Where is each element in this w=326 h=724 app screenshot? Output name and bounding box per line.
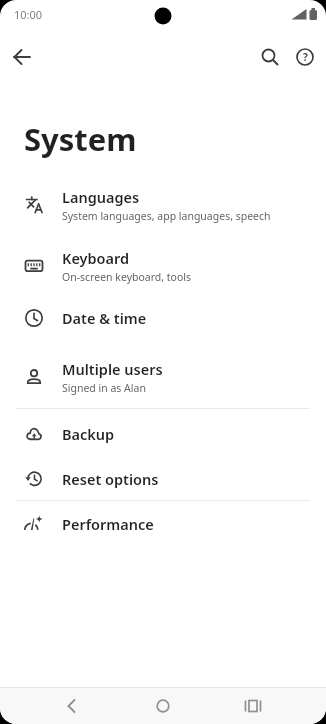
- button[interactable]: Keyboard: [0, 241, 326, 291]
- staticText: Languages: [62, 187, 140, 207]
- staticText: On-screen keyboard, tools: [62, 270, 192, 284]
- button[interactable]: [57, 691, 87, 721]
- button[interactable]: [254, 41, 286, 73]
- button[interactable]: [148, 691, 178, 721]
- staticText: Keyboard: [62, 248, 130, 268]
- staticText: Performance: [62, 514, 154, 534]
- staticText: Signed in as Alan: [62, 381, 146, 395]
- staticText: Date & time: [62, 308, 147, 328]
- button[interactable]: Languages: [0, 180, 326, 230]
- button[interactable]: ?: [289, 41, 321, 73]
- button[interactable]: [6, 41, 38, 73]
- button[interactable]: [238, 691, 268, 721]
- staticText: System languages, app languages, speech: [62, 209, 271, 223]
- button[interactable]: Multiple users: [0, 352, 326, 402]
- staticText: ?: [303, 50, 308, 64]
- button[interactable]: Performance: [0, 502, 326, 546]
- staticText: Reset options: [62, 469, 159, 489]
- staticText: 10:00: [14, 7, 43, 22]
- staticText: System: [24, 118, 137, 160]
- staticText: Backup: [62, 424, 115, 444]
- button[interactable]: Reset options: [0, 457, 326, 501]
- button[interactable]: Backup: [0, 412, 326, 456]
- button[interactable]: Date & time: [0, 296, 326, 340]
- staticText: Multiple users: [62, 359, 163, 379]
